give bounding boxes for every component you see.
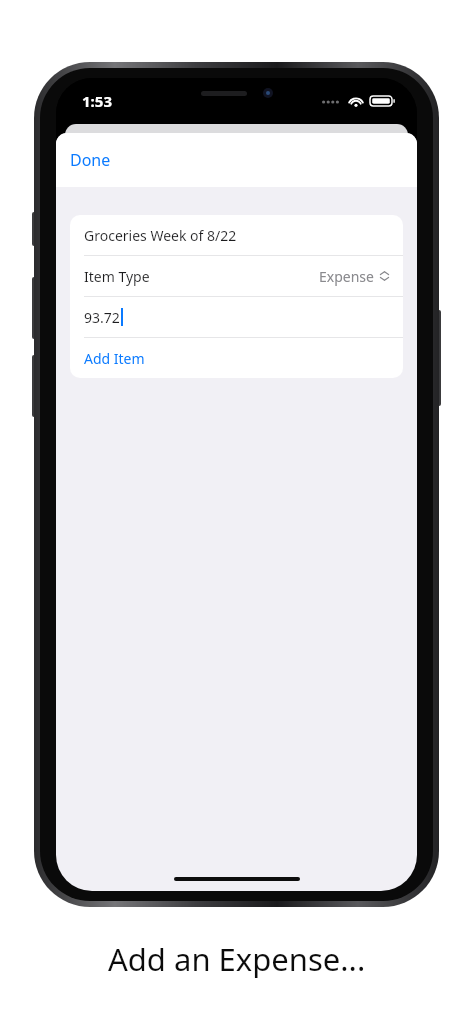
button[interactable]: Groceries Week of 8/22 — [70, 215, 403, 255]
staticText: Groceries Week of 8/22 — [84, 226, 237, 245]
button[interactable]: Done — [56, 141, 125, 179]
staticText: Expense — [319, 267, 374, 286]
button[interactable]: 93.72 — [70, 297, 403, 337]
button[interactable]: Add Item — [70, 338, 403, 378]
staticText: Add Item — [84, 349, 145, 368]
staticText: Add an Expense... — [108, 938, 366, 980]
staticText: 93.72 — [84, 308, 120, 327]
button[interactable]: Item Type — [70, 256, 403, 296]
staticText: Done — [70, 149, 111, 171]
staticText: 1:53 — [82, 91, 112, 111]
staticText: Item Type — [84, 267, 150, 286]
